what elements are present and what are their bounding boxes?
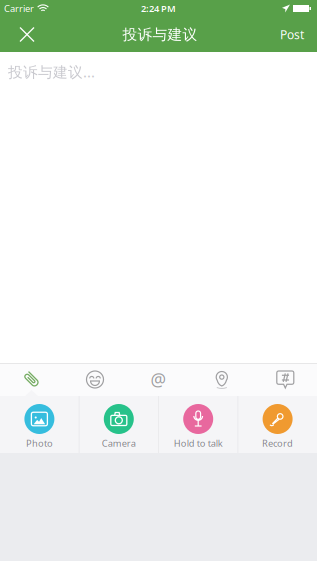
staticText: Camera xyxy=(102,437,136,449)
button[interactable] xyxy=(0,363,63,396)
staticText: Post xyxy=(280,26,304,42)
button[interactable]: Hold to talk xyxy=(159,396,237,453)
staticText: Record xyxy=(262,437,293,449)
staticText: @ xyxy=(150,368,166,391)
button[interactable]: Post xyxy=(266,17,317,52)
button[interactable]: Record xyxy=(238,396,317,453)
button[interactable] xyxy=(190,363,253,396)
button[interactable]: Photo xyxy=(0,396,79,453)
staticText: 投诉与建议... xyxy=(8,62,95,81)
staticText: Carrier xyxy=(4,2,34,15)
staticText: 2:24 PM xyxy=(141,2,176,15)
staticText: Photo xyxy=(26,437,53,449)
button[interactable]: Camera xyxy=(79,396,158,453)
button[interactable]: @ xyxy=(127,363,190,396)
button[interactable] xyxy=(63,363,127,396)
button[interactable] xyxy=(253,363,317,396)
button[interactable] xyxy=(0,17,54,52)
staticText: Hold to talk xyxy=(174,437,223,449)
staticText: 投诉与建议 xyxy=(122,25,197,43)
